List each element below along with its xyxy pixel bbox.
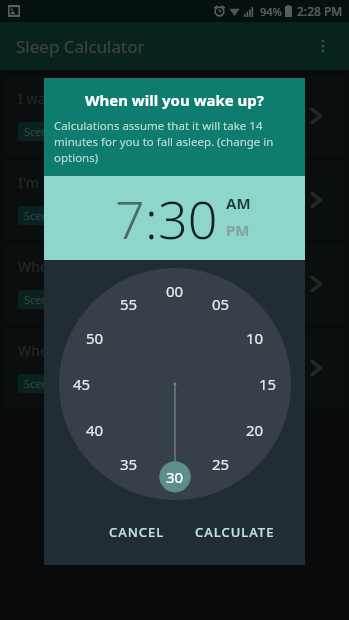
button[interactable]: More options: [303, 26, 343, 66]
button[interactable]: AM: [226, 193, 251, 213]
button[interactable]: When should I go to bed?: [4, 245, 345, 323]
button[interactable]: I'm going to bed now: [4, 161, 345, 239]
staticText: 30: [166, 467, 184, 487]
button[interactable]: Minute picker: [59, 268, 291, 500]
staticText: 30: [158, 183, 218, 254]
button[interactable]: When should I wake up?: [4, 329, 345, 407]
staticText: When should I wake up?: [18, 341, 181, 360]
staticText: Calculations assume that it will take 14…: [54, 118, 295, 166]
staticText: CANCEL: [109, 523, 165, 541]
staticText: I want to wake up at...: [18, 89, 166, 108]
staticText: 25: [212, 454, 230, 474]
staticText: 50: [86, 328, 104, 348]
staticText: Scenario 4: [24, 376, 78, 391]
staticText: When will you wake up?: [54, 90, 295, 110]
staticText: 20: [246, 420, 264, 440]
staticText: Scenario 3: [24, 292, 78, 307]
button[interactable]: PM: [226, 220, 250, 240]
staticText: Sleep Calculator: [16, 35, 145, 58]
staticText: 10: [246, 328, 264, 348]
staticText: CALCULATE: [195, 523, 275, 541]
staticText: 94%: [260, 4, 282, 19]
staticText: 35: [120, 454, 138, 474]
staticText: 45: [73, 374, 91, 394]
staticText: 2:28 PM: [297, 3, 343, 19]
staticText: 7: [115, 183, 145, 254]
button[interactable]: CALCULATE: [187, 517, 283, 547]
button[interactable]: CANCEL: [101, 517, 173, 547]
staticText: When should I go to bed?: [18, 257, 189, 276]
staticText: 40: [86, 420, 104, 440]
staticText: AM: [226, 193, 251, 213]
staticText: 05: [212, 294, 230, 314]
button[interactable]: 30: [158, 183, 218, 254]
staticText: :: [145, 183, 158, 254]
staticText: Scenario 2: [24, 208, 78, 223]
staticText: PM: [226, 220, 250, 240]
staticText: 55: [120, 294, 138, 314]
staticText: 15: [259, 374, 277, 394]
staticText: Scenario 1: [24, 124, 78, 139]
button[interactable]: 7: [115, 183, 145, 254]
staticText: 00: [166, 281, 184, 301]
staticText: I'm going to bed now: [18, 173, 160, 192]
button[interactable]: I want to wake up at...: [4, 77, 345, 155]
